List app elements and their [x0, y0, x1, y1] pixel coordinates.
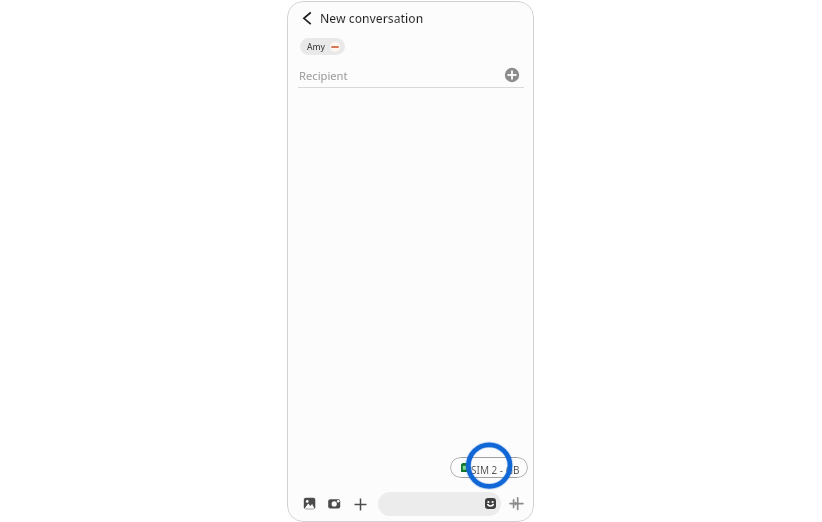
button[interactable]	[378, 492, 501, 516]
staticText: New conversation	[320, 10, 424, 26]
button[interactable]: Add attachment	[353, 497, 368, 512]
button[interactable]: Voice message	[509, 496, 524, 511]
button[interactable]: Back	[297, 9, 317, 29]
staticText: SIM 2 - GB	[471, 463, 520, 477]
staticText: Recipient	[299, 68, 348, 83]
button[interactable]: Emoji	[484, 497, 497, 510]
button[interactable]: SIM 2 - GB	[450, 457, 528, 478]
button[interactable]: Add recipient	[504, 67, 520, 83]
button[interactable]: Camera	[327, 496, 342, 511]
button[interactable]: Gallery	[302, 496, 317, 511]
staticText: Amy	[307, 41, 326, 53]
button[interactable]: Amy	[300, 38, 345, 55]
button[interactable]: Recipient	[298, 62, 498, 88]
